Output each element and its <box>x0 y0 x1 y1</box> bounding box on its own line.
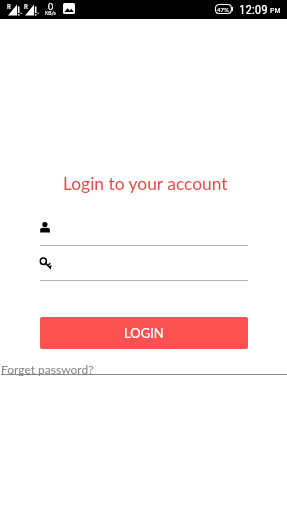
staticText: 47% <box>217 6 229 13</box>
staticText: 12:09 <box>239 2 268 17</box>
staticText: 0 <box>48 1 54 12</box>
staticText: R <box>24 3 28 11</box>
staticText: R <box>7 3 11 11</box>
button[interactable]: LOGIN <box>40 317 248 349</box>
staticText: LOGIN <box>124 325 164 341</box>
button[interactable]: Password <box>40 250 248 281</box>
staticText: PM <box>270 6 281 15</box>
button[interactable]: Username <box>40 215 248 246</box>
staticText: Login to your account <box>63 173 228 194</box>
staticText: KB/s <box>45 10 56 16</box>
button[interactable]: Forget password? <box>1 362 287 377</box>
staticText: Forget password? <box>1 362 94 376</box>
